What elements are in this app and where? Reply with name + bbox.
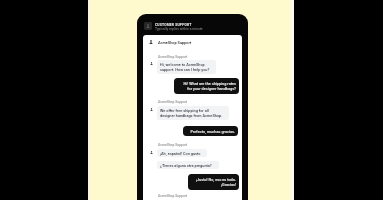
staticText: ¿Tienes alguna otra pregunta? [160, 163, 212, 167]
button[interactable]: Hi! What are the shipping rates for your… [174, 78, 239, 94]
button[interactable]: We offer free shipping for all designer … [157, 106, 229, 120]
staticText: We offer free shipping for all designer … [160, 108, 223, 118]
staticText: ¡Justo! No, eso es todo. ¡Gracias! [191, 177, 236, 187]
staticText: Hi, welcome to AcmeShop support. How can… [160, 62, 210, 72]
staticText: Hi! What are the shipping rates for your… [177, 81, 236, 91]
staticText: AcmeShop Support [158, 143, 188, 147]
button[interactable]: ¿Tienes alguna otra pregunta? [157, 161, 219, 169]
button[interactable]: AcmeShop Support [143, 37, 242, 46]
button[interactable]: Perfecto, muchas gracias. [183, 126, 238, 136]
button[interactable]: ¡Justo! No, eso es todo. ¡Gracias! [188, 174, 239, 190]
button[interactable]: Hi, welcome to AcmeShop support. How can… [157, 60, 216, 74]
staticText: AcmeShop Support [158, 194, 188, 198]
staticText: Perfecto, muchas gracias. [186, 129, 235, 133]
staticText: CUSTOMER SUPPORT [155, 23, 192, 27]
staticText: ¡Ah, español! Con gusto [160, 151, 201, 155]
button[interactable]: Support agent avatar [144, 22, 152, 30]
staticText: AcmeShop Support [158, 55, 188, 59]
staticText: AcmeShop Support [158, 100, 188, 104]
staticText: AcmeShop Support [158, 40, 192, 44]
staticText: Typically replies within a minute [155, 27, 203, 31]
button[interactable]: ¡Ah, español! Con gusto [157, 149, 207, 157]
